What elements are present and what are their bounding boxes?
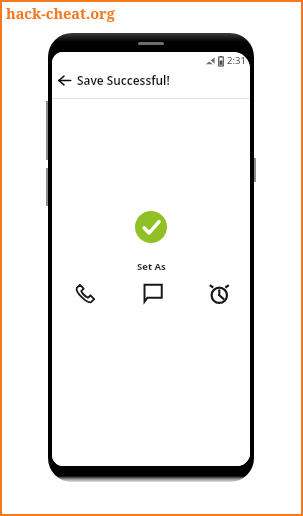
staticText: Save Successful! (77, 72, 170, 88)
button[interactable]: Set as alarm (204, 278, 234, 308)
button[interactable]: Set as notification (137, 278, 167, 308)
staticText: 2:31 (227, 54, 246, 67)
staticText: Set As (137, 260, 166, 273)
staticText: hack-cheat.org (6, 3, 115, 23)
button[interactable]: Set as ringtone (70, 278, 100, 308)
button[interactable]: Back (54, 70, 74, 90)
